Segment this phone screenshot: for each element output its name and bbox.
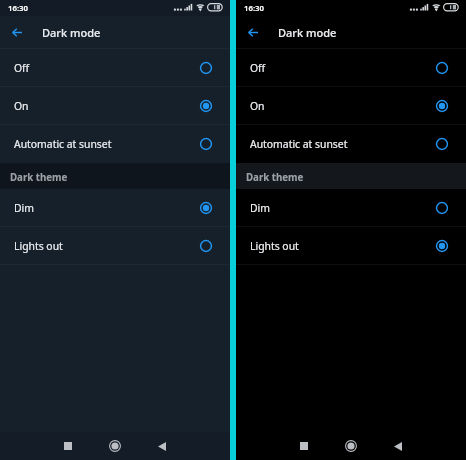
button[interactable]: On [0,87,230,124]
button[interactable]: On [236,87,466,124]
button[interactable]: Home [338,432,364,460]
staticText: Dim [250,201,270,215]
button[interactable]: Dim [0,189,230,226]
staticText: Off [250,61,266,75]
button[interactable]: Off [236,49,466,86]
button[interactable]: Lights out [0,227,230,264]
button[interactable]: Automatic at sunset [0,125,230,162]
staticText: On [14,99,29,113]
staticText: Lights out [14,239,63,253]
staticText: 16:30 [244,3,264,14]
staticText: Dim [14,201,34,215]
button[interactable]: Back [385,432,411,460]
button[interactable]: Recent apps [55,432,81,460]
staticText: Dark mode [42,25,101,40]
staticText: Dark theme [246,171,304,184]
button[interactable]: Lights out [236,227,466,264]
staticText: Dark mode [278,25,337,40]
staticText: On [250,99,265,113]
staticText: 16:30 [8,3,28,14]
staticText: Off [14,61,30,75]
button[interactable]: Off [0,49,230,86]
button[interactable]: Dim [236,189,466,226]
staticText: Lights out [250,239,299,253]
button[interactable]: Recent apps [291,432,317,460]
button[interactable]: Automatic at sunset [236,125,466,162]
button[interactable]: Back [149,432,175,460]
staticText: Automatic at sunset [14,137,112,151]
button[interactable]: Back [7,22,27,42]
button[interactable]: Back [243,22,263,42]
staticText: Automatic at sunset [250,137,348,151]
staticText: Dark theme [10,171,68,184]
button[interactable]: Home [102,432,128,460]
